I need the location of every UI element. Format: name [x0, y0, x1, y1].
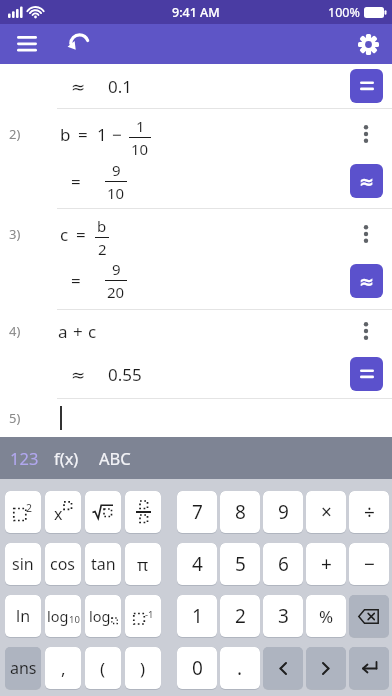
button[interactable]: +: [306, 543, 346, 585]
staticText: 2: [235, 603, 246, 629]
staticText: f(x): [54, 447, 79, 469]
staticText: b: [60, 123, 71, 146]
button[interactable]: %: [306, 595, 346, 637]
button[interactable]: .: [220, 647, 260, 689]
button[interactable]: 9: [263, 491, 303, 533]
button[interactable]: [85, 491, 121, 533]
button[interactable]: 3: [263, 595, 303, 637]
button[interactable]: [65, 32, 92, 52]
staticText: log: [47, 606, 69, 626]
button[interactable]: 5): [0, 399, 392, 437]
staticText: =: [78, 123, 88, 146]
button[interactable]: [17, 36, 37, 52]
button[interactable]: log: [45, 595, 81, 637]
button[interactable]: [306, 647, 346, 689]
button[interactable]: 123: [10, 437, 39, 479]
staticText: (: [100, 657, 106, 680]
button[interactable]: cos: [45, 543, 81, 585]
button[interactable]: ≈: [350, 264, 383, 298]
staticText: 123: [10, 447, 39, 469]
staticText: c: [88, 320, 97, 343]
button[interactable]: =: [0, 259, 392, 302]
button[interactable]: x: [45, 491, 81, 533]
staticText: ,: [61, 657, 66, 680]
staticText: 7: [192, 499, 203, 525]
button[interactable]: −: [349, 543, 389, 585]
button[interactable]: ,: [45, 647, 81, 689]
button[interactable]: =: [0, 159, 392, 203]
button[interactable]: ans: [5, 647, 41, 689]
button[interactable]: ÷: [349, 491, 389, 533]
button[interactable]: [263, 647, 303, 689]
staticText: -1: [145, 608, 154, 621]
button[interactable]: [350, 357, 383, 391]
button[interactable]: ln: [5, 595, 41, 637]
staticText: sin: [12, 553, 34, 575]
button[interactable]: 8: [220, 491, 260, 533]
staticText: 100%: [328, 4, 360, 21]
button[interactable]: 1: [177, 595, 217, 637]
staticText: 5: [235, 551, 246, 577]
staticText: cos: [50, 553, 76, 575]
staticText: 10: [69, 613, 80, 626]
button[interactable]: π: [125, 543, 161, 585]
staticText: tan: [91, 553, 116, 575]
staticText: x: [54, 503, 63, 525]
button[interactable]: [125, 491, 161, 533]
staticText: +: [321, 551, 332, 577]
staticText: 3: [278, 603, 289, 629]
staticText: 5): [9, 409, 21, 427]
button[interactable]: [358, 34, 379, 55]
staticText: ≈: [359, 271, 375, 292]
staticText: ): [140, 657, 146, 680]
button[interactable]: 2: [220, 595, 260, 637]
button[interactable]: [363, 124, 369, 144]
staticText: log: [89, 606, 111, 626]
button[interactable]: 6: [263, 543, 303, 585]
button[interactable]: [363, 224, 369, 244]
staticText: 1: [136, 116, 145, 136]
button[interactable]: [363, 321, 369, 341]
staticText: =: [71, 269, 81, 292]
staticText: 0.55: [108, 363, 142, 386]
button[interactable]: 0: [177, 647, 217, 689]
staticText: 8: [235, 499, 246, 525]
staticText: =: [76, 223, 86, 246]
staticText: 2: [26, 501, 33, 515]
staticText: 10: [131, 139, 149, 159]
button[interactable]: ): [125, 647, 161, 689]
button[interactable]: tan: [85, 543, 121, 585]
staticText: 1: [97, 123, 107, 146]
button[interactable]: [349, 595, 389, 637]
button[interactable]: ×: [306, 491, 346, 533]
staticText: ÷: [364, 499, 375, 525]
button[interactable]: -1: [125, 595, 161, 637]
button[interactable]: f(x): [54, 437, 79, 479]
button[interactable]: 7: [177, 491, 217, 533]
staticText: 6: [278, 551, 289, 577]
staticText: 3): [9, 225, 21, 243]
staticText: 9: [112, 160, 121, 180]
button[interactable]: 3): [0, 209, 392, 259]
staticText: %: [319, 605, 334, 628]
staticText: 0.1: [108, 75, 133, 98]
button[interactable]: [350, 69, 383, 103]
staticText: −: [112, 123, 122, 146]
button[interactable]: log: [85, 595, 121, 637]
button[interactable]: 2: [5, 491, 41, 533]
button[interactable]: (: [85, 647, 121, 689]
button[interactable]: sin: [5, 543, 41, 585]
button[interactable]: [349, 647, 389, 689]
button[interactable]: 5: [220, 543, 260, 585]
staticText: ≈: [71, 77, 86, 97]
button[interactable]: ≈: [0, 64, 392, 108]
button[interactable]: ABC: [99, 437, 131, 479]
staticText: −: [364, 551, 375, 577]
button[interactable]: ≈: [350, 164, 383, 198]
staticText: +: [73, 320, 83, 343]
button[interactable]: 2): [0, 109, 392, 159]
button[interactable]: 4: [177, 543, 217, 585]
staticText: b: [97, 216, 107, 236]
button[interactable]: 4): [0, 310, 392, 352]
button[interactable]: ≈: [0, 352, 392, 396]
